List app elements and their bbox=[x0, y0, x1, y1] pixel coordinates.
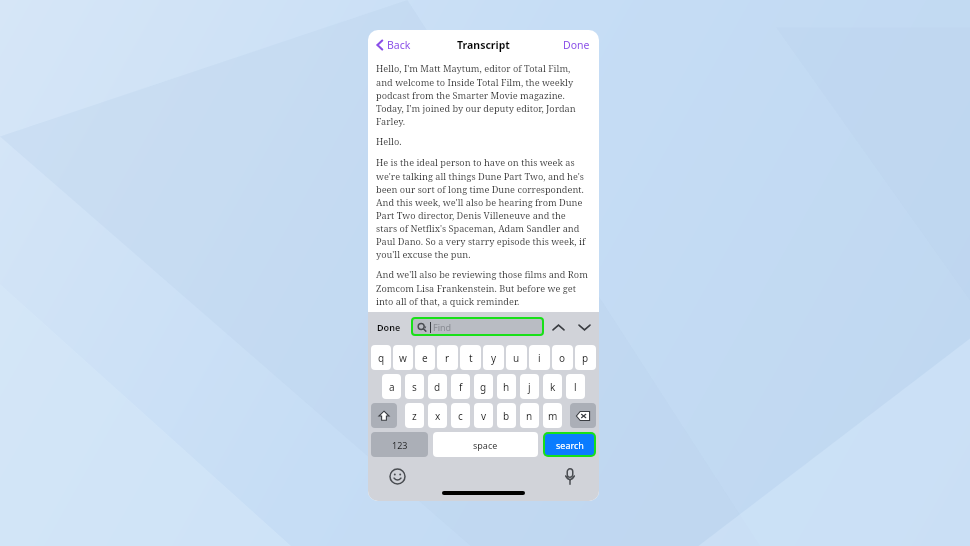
staticText: h bbox=[503, 380, 510, 394]
staticText: f bbox=[459, 380, 463, 394]
button[interactable]: search bbox=[545, 434, 594, 455]
button[interactable]: j bbox=[520, 374, 539, 399]
staticText: n bbox=[526, 409, 533, 423]
staticText: v bbox=[481, 409, 487, 423]
staticText: b bbox=[503, 409, 510, 423]
button[interactable]: v bbox=[474, 403, 493, 428]
staticText: And we'll also be reviewing those films … bbox=[376, 268, 589, 307]
button[interactable]: Done bbox=[560, 35, 593, 55]
staticText: z bbox=[412, 409, 417, 423]
button[interactable]: e bbox=[415, 345, 435, 370]
button[interactable]: f bbox=[451, 374, 470, 399]
button[interactable]: Back bbox=[374, 35, 413, 55]
button[interactable]: b bbox=[497, 403, 516, 428]
staticText: r bbox=[445, 351, 450, 365]
staticText: Transcript bbox=[457, 38, 510, 52]
button[interactable]: w bbox=[393, 345, 413, 370]
button[interactable]: t bbox=[460, 345, 481, 370]
button[interactable]: y bbox=[483, 345, 504, 370]
button[interactable]: d bbox=[428, 374, 447, 399]
staticText: q bbox=[378, 351, 385, 365]
staticText: Hello. bbox=[376, 135, 402, 148]
button[interactable]: s bbox=[405, 374, 424, 399]
staticText: He is the ideal person to have on this w… bbox=[376, 156, 589, 260]
button[interactable]: Previous result bbox=[550, 319, 566, 335]
button[interactable]: Done bbox=[373, 317, 405, 337]
staticText: u bbox=[513, 351, 520, 365]
button[interactable]: l bbox=[566, 374, 585, 399]
staticText: Hello, I'm Matt Maytum, editor of Total … bbox=[376, 62, 589, 127]
button[interactable]: Find bbox=[413, 319, 542, 334]
button[interactable]: Key bbox=[570, 403, 596, 428]
staticText: i bbox=[538, 351, 541, 365]
staticText: s bbox=[412, 380, 417, 394]
staticText: Back bbox=[387, 38, 411, 52]
button[interactable]: c bbox=[451, 403, 470, 428]
staticText: c bbox=[458, 409, 463, 423]
staticText: g bbox=[480, 380, 487, 394]
button[interactable]: Dictate bbox=[559, 465, 581, 487]
staticText: space bbox=[473, 439, 498, 451]
button[interactable]: Next result bbox=[576, 319, 592, 335]
button[interactable]: i bbox=[529, 345, 550, 370]
staticText: Done bbox=[563, 38, 590, 52]
button[interactable]: k bbox=[543, 374, 562, 399]
staticText: 123 bbox=[392, 439, 408, 451]
button[interactable]: o bbox=[552, 345, 573, 370]
button[interactable]: u bbox=[506, 345, 527, 370]
button[interactable]: x bbox=[428, 403, 447, 428]
staticText: p bbox=[582, 351, 589, 365]
button[interactable]: r bbox=[437, 345, 458, 370]
staticText: Find bbox=[433, 321, 452, 333]
staticText: e bbox=[422, 351, 428, 365]
button[interactable]: a bbox=[382, 374, 401, 399]
staticText: w bbox=[399, 351, 407, 365]
button[interactable]: m bbox=[543, 403, 562, 428]
button[interactable]: 123 bbox=[371, 432, 428, 457]
button[interactable]: q bbox=[371, 345, 391, 370]
staticText: k bbox=[550, 380, 556, 394]
button[interactable]: space bbox=[433, 432, 538, 457]
staticText: l bbox=[574, 380, 577, 394]
button[interactable]: n bbox=[520, 403, 539, 428]
button[interactable]: h bbox=[497, 374, 516, 399]
staticText: y bbox=[491, 351, 497, 365]
staticText: t bbox=[469, 351, 473, 365]
button[interactable]: Emoji bbox=[386, 465, 408, 487]
staticText: j bbox=[528, 380, 531, 394]
button[interactable]: z bbox=[405, 403, 424, 428]
staticText: x bbox=[435, 409, 441, 423]
staticText: Done bbox=[377, 321, 401, 333]
button[interactable]: g bbox=[474, 374, 493, 399]
staticText: o bbox=[559, 351, 566, 365]
staticText: a bbox=[389, 380, 395, 394]
staticText: search bbox=[556, 439, 584, 451]
staticText: d bbox=[434, 380, 441, 394]
button[interactable]: Key bbox=[371, 403, 397, 428]
button[interactable]: p bbox=[575, 345, 596, 370]
staticText: m bbox=[548, 409, 558, 423]
